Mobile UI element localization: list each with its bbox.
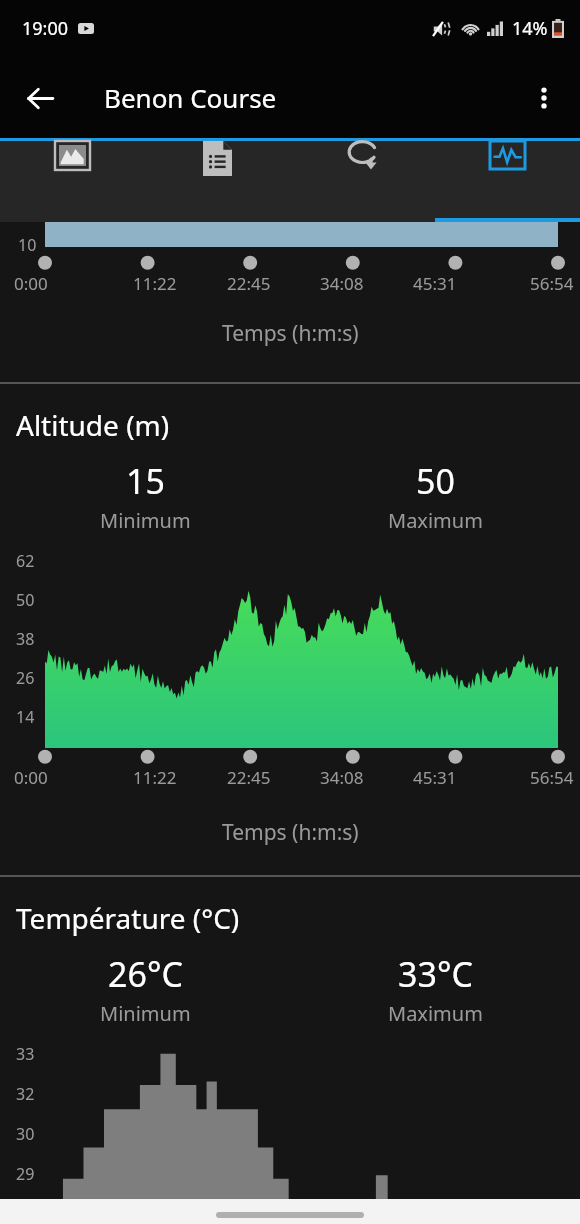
staticText: 0:00 [14, 766, 48, 789]
staticText: 19:00 [22, 16, 69, 41]
staticText: 32 [16, 1083, 35, 1105]
staticText: 33°C [398, 951, 473, 997]
button[interactable]: Back [12, 70, 68, 126]
staticText: Altitude (m) [16, 406, 170, 444]
staticText: 33 [16, 1043, 35, 1065]
staticText: 11:22 [133, 766, 177, 789]
button[interactable]: Laps [290, 141, 435, 170]
staticText: 34:08 [320, 272, 364, 295]
staticText: Température (°C) [16, 899, 240, 937]
staticText: Temps (h:m:s) [222, 818, 359, 847]
staticText: 22:45 [227, 766, 271, 789]
staticText: 29 [16, 1163, 35, 1185]
staticText: Minimum [100, 1000, 191, 1027]
button[interactable]: More options [516, 70, 572, 126]
staticText: 26°C [108, 951, 183, 997]
staticText: 45:31 [413, 766, 457, 789]
button[interactable]: Details [145, 141, 290, 176]
staticText: 14 [16, 706, 35, 728]
staticText: 50 [16, 589, 35, 611]
staticText: Maximum [388, 1000, 483, 1027]
staticText: 30 [16, 1123, 35, 1145]
button[interactable]: Charts [435, 141, 580, 169]
staticText: 22:45 [227, 272, 271, 295]
staticText: 62 [16, 550, 35, 572]
staticText: 45:31 [413, 272, 457, 295]
staticText: 11:22 [133, 272, 177, 295]
staticText: 34:08 [320, 766, 364, 789]
staticText: 10 [18, 234, 37, 256]
staticText: Benon Course [104, 80, 277, 115]
button[interactable]: Map [0, 141, 145, 170]
staticText: 50 [416, 458, 455, 504]
staticText: Minimum [100, 507, 191, 534]
staticText: 15 [126, 458, 165, 504]
staticText: 56:54 [530, 272, 574, 295]
staticText: Temps (h:m:s) [222, 319, 359, 348]
staticText: 0:00 [14, 272, 48, 295]
staticText: 14% [512, 16, 548, 41]
staticText: 38 [16, 628, 35, 650]
staticText: 26 [16, 667, 35, 689]
staticText: 56:54 [530, 766, 574, 789]
staticText: Maximum [388, 507, 483, 534]
